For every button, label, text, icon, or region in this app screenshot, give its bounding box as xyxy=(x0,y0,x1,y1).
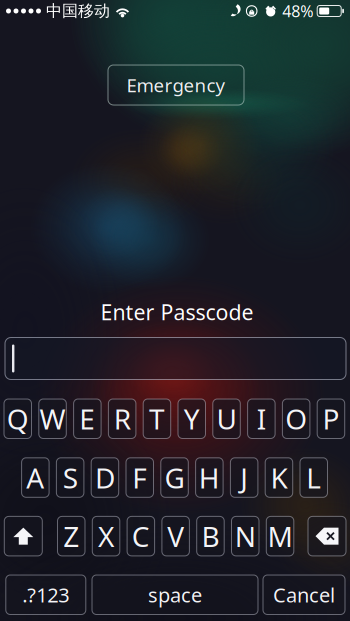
staticText: D xyxy=(95,459,115,496)
button[interactable]: H xyxy=(196,458,223,497)
button[interactable]: F xyxy=(126,458,153,497)
staticText: U xyxy=(216,400,236,437)
button[interactable]: C xyxy=(127,516,155,556)
button[interactable]: space xyxy=(92,575,258,614)
button[interactable]: E xyxy=(74,399,101,438)
button[interactable]: Cancel xyxy=(263,575,345,614)
staticText: 中国移动 xyxy=(46,1,110,21)
staticText: N xyxy=(235,518,256,555)
button[interactable]: S xyxy=(56,458,84,497)
button[interactable]: B xyxy=(197,516,224,556)
button[interactable]: Shift xyxy=(4,516,42,556)
button[interactable]: A xyxy=(22,458,49,497)
staticText: V xyxy=(167,518,184,555)
button[interactable]: Emergency xyxy=(108,65,244,105)
button[interactable]: L xyxy=(300,458,327,497)
staticText: L xyxy=(306,459,321,496)
button[interactable]: Z xyxy=(57,516,85,556)
staticText: space xyxy=(148,581,202,608)
staticText: .?123 xyxy=(22,581,69,608)
button[interactable]: J xyxy=(230,458,258,497)
button[interactable]: R xyxy=(108,399,136,438)
staticText: J xyxy=(240,459,248,496)
staticText: K xyxy=(270,459,287,496)
staticText: P xyxy=(322,400,339,437)
staticText: B xyxy=(201,518,219,555)
staticText: Cancel xyxy=(273,581,335,608)
staticText: M xyxy=(267,518,292,555)
button[interactable]: G xyxy=(161,458,188,497)
staticText: H xyxy=(199,459,220,496)
staticText: W xyxy=(39,400,65,437)
staticText: I xyxy=(257,400,266,437)
staticText: Y xyxy=(184,400,200,437)
button[interactable]: U xyxy=(213,399,240,438)
staticText: Enter Passcode xyxy=(100,298,253,326)
button[interactable]: K xyxy=(265,458,293,497)
staticText: R xyxy=(114,400,131,437)
button[interactable]: N xyxy=(231,516,259,556)
staticText: Q xyxy=(7,400,29,437)
staticText: Z xyxy=(63,518,79,555)
button[interactable]: Q xyxy=(4,399,31,438)
button[interactable]: T xyxy=(143,399,171,438)
button[interactable]: W xyxy=(39,399,66,438)
staticText: Emergency xyxy=(126,73,225,97)
staticText: O xyxy=(285,400,307,437)
button[interactable]: M xyxy=(266,516,294,556)
button[interactable]: D xyxy=(91,458,119,497)
staticText: E xyxy=(79,400,95,437)
staticText: F xyxy=(132,459,147,496)
button[interactable]: P xyxy=(317,399,345,438)
button[interactable]: O xyxy=(282,399,310,438)
staticText: G xyxy=(164,459,184,496)
staticText: A xyxy=(26,459,44,496)
button[interactable]: X xyxy=(92,516,120,556)
button[interactable]: V xyxy=(162,516,189,556)
staticText: X xyxy=(98,518,114,555)
button[interactable]: I xyxy=(248,399,275,438)
staticText: 48% xyxy=(282,0,313,22)
staticText: T xyxy=(149,400,165,437)
button[interactable]: Y xyxy=(178,399,205,438)
staticText: C xyxy=(132,518,150,555)
staticText: S xyxy=(63,459,78,496)
button[interactable]: Delete xyxy=(308,516,346,556)
button[interactable]: .?123 xyxy=(6,575,86,614)
